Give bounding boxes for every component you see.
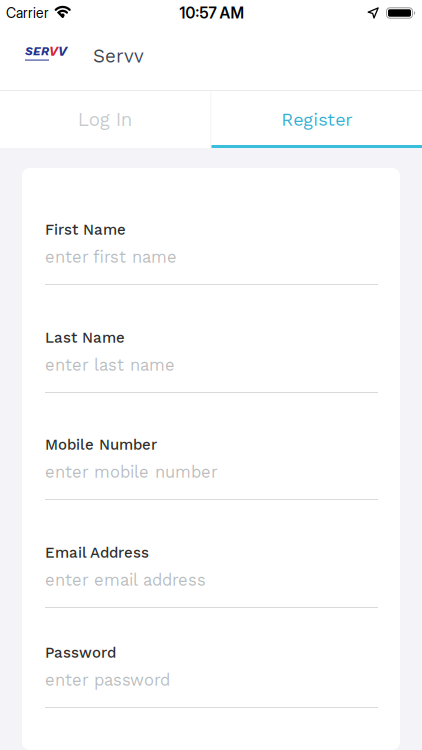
- staticText: Last Name: [45, 329, 125, 346]
- staticText: enter password: [45, 670, 170, 690]
- staticText: SER: [25, 44, 49, 58]
- staticText: enter mobile number: [45, 462, 218, 482]
- staticText: V: [49, 43, 58, 59]
- staticText: Register: [281, 109, 352, 130]
- button[interactable]: Log In: [0, 91, 210, 148]
- staticText: enter first name: [45, 247, 177, 267]
- staticText: First Name: [45, 221, 126, 238]
- button[interactable]: Mobile Number: [45, 461, 378, 500]
- button[interactable]: Password: [45, 669, 378, 708]
- staticText: Password: [45, 644, 116, 661]
- staticText: V: [58, 43, 67, 59]
- staticText: Mobile Number: [45, 436, 157, 453]
- button[interactable]: Register: [211, 91, 422, 148]
- staticText: Log In: [78, 109, 133, 130]
- staticText: enter email address: [45, 570, 206, 590]
- staticText: 10:57 AM: [179, 4, 244, 22]
- button[interactable]: Last Name: [45, 354, 378, 393]
- button[interactable]: First Name: [45, 246, 378, 285]
- staticText: Servv: [93, 45, 144, 67]
- button[interactable]: Email Address: [45, 569, 378, 608]
- staticText: Email Address: [45, 544, 149, 561]
- staticText: Carrier: [6, 4, 49, 21]
- staticText: enter last name: [45, 355, 175, 375]
